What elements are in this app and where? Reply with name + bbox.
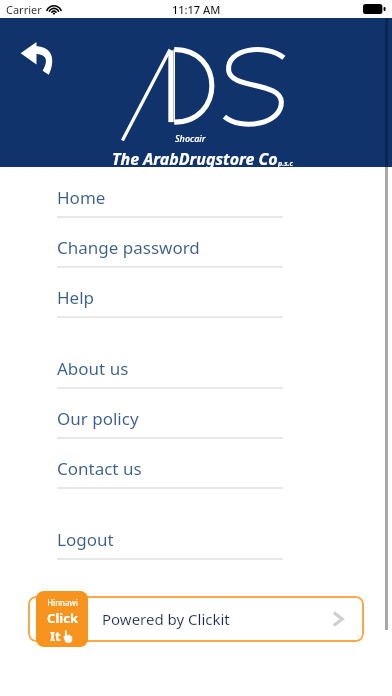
staticText: Home [57, 186, 106, 209]
staticText: Hinnawi [47, 597, 78, 608]
staticText: Powered by Clickit [102, 609, 332, 629]
staticText: It [50, 627, 61, 645]
button[interactable]: Back [18, 38, 62, 78]
button[interactable]: Logout [0, 520, 392, 570]
staticText: Change password [57, 236, 200, 259]
button[interactable]: Contact us [0, 449, 392, 499]
staticText: Shocair [175, 132, 206, 144]
button[interactable]: Powered by Clickit [28, 596, 364, 642]
staticText: Help [57, 286, 95, 309]
button[interactable]: Hinnawi Click It [36, 591, 88, 647]
staticText: About us [57, 357, 129, 380]
staticText: The ArabDrugstore Co [112, 148, 278, 170]
button[interactable]: Help [0, 278, 392, 328]
button[interactable]: Change password [0, 228, 392, 278]
staticText: Contact us [57, 457, 142, 480]
button[interactable]: Our policy [0, 399, 392, 449]
staticText: Carrier [6, 2, 42, 17]
staticText: 11:17 AM [172, 2, 221, 17]
button[interactable]: About us [0, 349, 392, 399]
staticText: Click [47, 609, 78, 627]
staticText: Logout [57, 528, 114, 551]
staticText: p.s.c [278, 159, 293, 169]
staticText: Our policy [57, 407, 139, 430]
button[interactable]: Home [0, 178, 392, 228]
